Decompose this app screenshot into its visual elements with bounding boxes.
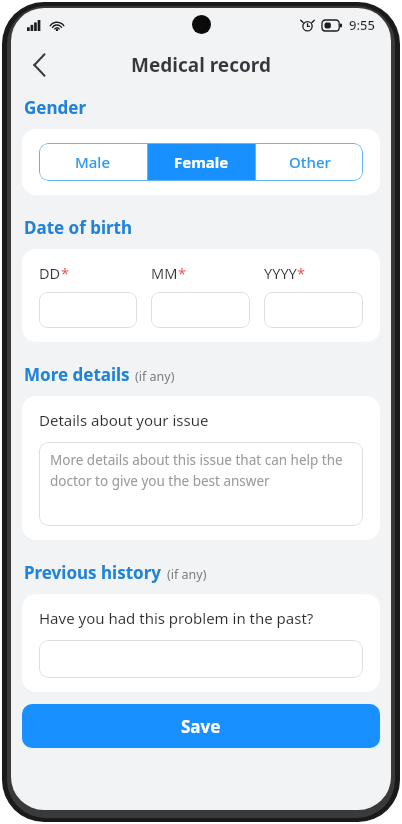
staticText: Female bbox=[174, 152, 229, 172]
button[interactable]: Save bbox=[22, 704, 380, 748]
button[interactable] bbox=[151, 292, 250, 328]
staticText: Details about your issue bbox=[39, 410, 209, 430]
staticText: Save bbox=[181, 715, 221, 738]
staticText: Other bbox=[289, 152, 331, 172]
staticText: (if any) bbox=[135, 368, 175, 385]
staticText: Have you had this problem in the past? bbox=[39, 608, 314, 628]
staticText: Medical record bbox=[131, 52, 271, 78]
button[interactable] bbox=[39, 292, 137, 328]
staticText: 9:55 bbox=[349, 16, 375, 34]
button[interactable]: Male bbox=[39, 143, 147, 181]
button[interactable] bbox=[39, 640, 363, 678]
staticText: * bbox=[297, 263, 305, 283]
button[interactable]: Back bbox=[17, 43, 61, 87]
staticText: Gender bbox=[24, 96, 86, 119]
staticText: (if any) bbox=[167, 566, 207, 583]
staticText: More details about this issue that can h… bbox=[50, 451, 352, 490]
staticText: More details bbox=[24, 363, 130, 386]
staticText: YYYY bbox=[264, 263, 297, 283]
staticText: Previous history bbox=[24, 561, 162, 584]
staticText: * bbox=[61, 263, 69, 283]
button[interactable]: More details about this issue that can h… bbox=[39, 442, 363, 526]
staticText: DD bbox=[39, 263, 61, 283]
staticText: Date of birth bbox=[24, 216, 133, 239]
button[interactable]: Other bbox=[256, 143, 363, 181]
staticText: MM bbox=[151, 263, 178, 283]
button[interactable]: Female bbox=[148, 143, 255, 181]
button[interactable] bbox=[264, 292, 363, 328]
staticText: * bbox=[178, 263, 186, 283]
staticText: Male bbox=[75, 152, 111, 172]
